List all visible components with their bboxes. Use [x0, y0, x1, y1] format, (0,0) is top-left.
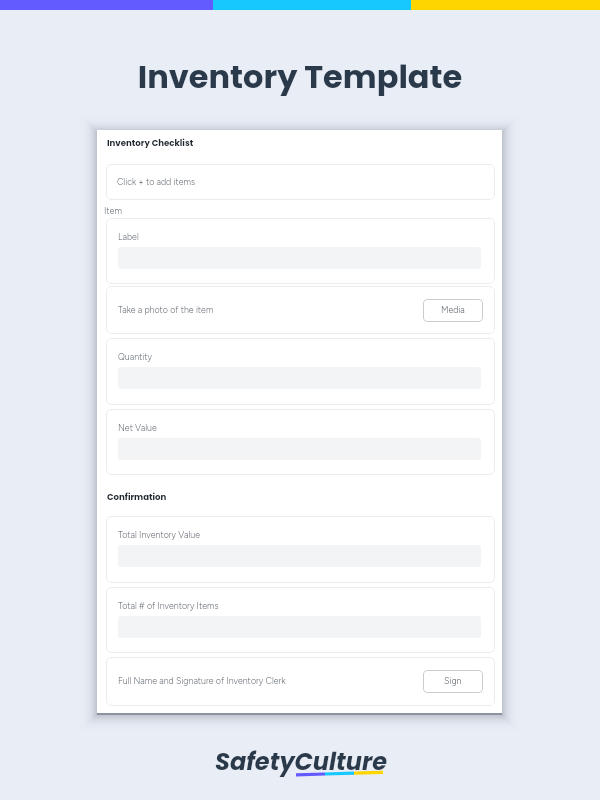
staticText: Total Inventory Value: [118, 530, 200, 541]
button[interactable]: Sign: [423, 670, 483, 693]
button[interactable]: Label: [106, 218, 495, 284]
staticText: Inventory Template: [0, 54, 600, 99]
staticText: Item: [104, 206, 122, 217]
button[interactable]: Net Value: [106, 409, 495, 475]
staticText: Net Value: [118, 423, 157, 434]
button[interactable]: Quantity: [106, 338, 495, 405]
staticText: Sign: [444, 676, 462, 687]
staticText: Click + to add items: [117, 177, 196, 188]
button[interactable]: Take a photo of the item: [106, 286, 495, 334]
button[interactable]: Total Inventory Value: [106, 516, 495, 583]
button[interactable]: Click + to add items: [106, 164, 495, 200]
staticText: Inventory Checklist: [107, 137, 194, 149]
staticText: Label: [118, 232, 139, 243]
button[interactable]: Full Name and Signature of Inventory Cle…: [106, 657, 495, 706]
staticText: Quantity: [118, 352, 153, 363]
staticText: Take a photo of the item: [118, 305, 214, 316]
staticText: Full Name and Signature of Inventory Cle…: [118, 676, 286, 687]
button[interactable]: Media: [423, 299, 483, 322]
staticText: Media: [441, 305, 465, 316]
staticText: Confirmation: [107, 491, 167, 503]
staticText: SafetyCulture: [215, 745, 388, 777]
staticText: Total # of Inventory Items: [118, 601, 219, 612]
button[interactable]: Total # of Inventory Items: [106, 587, 495, 653]
